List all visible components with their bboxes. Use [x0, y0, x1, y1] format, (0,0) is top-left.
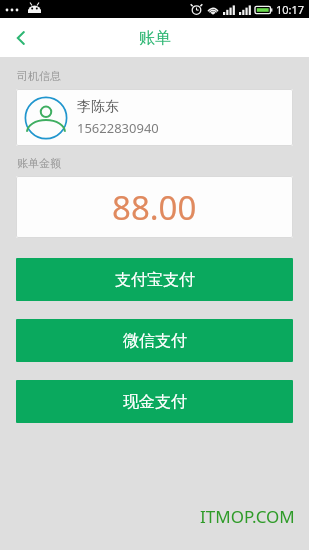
- button[interactable]: 李陈东: [16, 89, 293, 146]
- staticText: ITMOP.COM: [200, 505, 295, 528]
- button[interactable]: Back: [0, 18, 42, 57]
- staticText: 现金支付: [123, 392, 187, 412]
- staticText: 司机信息: [17, 69, 61, 83]
- button[interactable]: 微信支付: [16, 319, 293, 362]
- staticText: 10:17: [276, 2, 305, 17]
- staticText: 微信支付: [123, 331, 187, 351]
- staticText: 支付宝支付: [115, 270, 195, 290]
- staticText: 88.00: [112, 185, 197, 230]
- staticText: 李陈东: [77, 98, 119, 116]
- button[interactable]: 现金支付: [16, 380, 293, 423]
- staticText: 账单: [139, 28, 171, 48]
- staticText: 15622830940: [77, 119, 159, 137]
- button[interactable]: 支付宝支付: [16, 258, 293, 301]
- staticText: 账单金额: [17, 156, 61, 170]
